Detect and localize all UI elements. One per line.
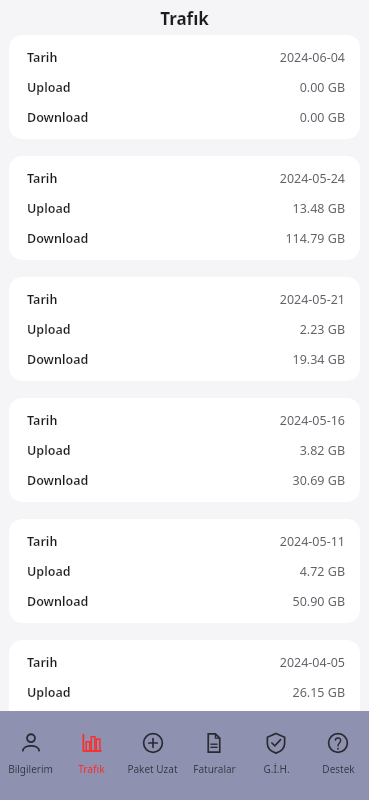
- staticText: Upload: [27, 200, 71, 217]
- button[interactable]: Tarih: [9, 519, 360, 623]
- staticText: Download: [27, 472, 89, 489]
- staticText: Download: [27, 230, 89, 247]
- staticText: Tarih: [27, 654, 58, 671]
- button[interactable]: Bilgilerim: [0, 711, 61, 800]
- button[interactable]: Tarih: [9, 277, 360, 381]
- staticText: 0.00 GB: [299, 79, 345, 96]
- staticText: Tarih: [27, 170, 58, 187]
- staticText: Tarih: [27, 291, 58, 308]
- staticText: Upload: [27, 321, 71, 338]
- button[interactable]: Tarih: [9, 640, 360, 744]
- button[interactable]: Faturalar: [183, 711, 245, 800]
- staticText: 26.15 GB: [292, 684, 345, 701]
- staticText: 3.82 GB: [299, 442, 345, 459]
- staticText: 2024-05-21: [279, 291, 345, 308]
- staticText: 2024-05-24: [279, 170, 345, 187]
- staticText: G.İ.H.: [263, 762, 290, 776]
- staticText: 2024-06-04: [279, 49, 345, 66]
- staticText: 0.00 GB: [299, 109, 345, 126]
- staticText: Upload: [27, 442, 71, 459]
- staticText: 114.79 GB: [285, 230, 345, 247]
- staticText: Download: [27, 593, 89, 610]
- staticText: 2.23 GB: [299, 321, 345, 338]
- staticText: 50.90 GB: [292, 593, 345, 610]
- staticText: Tarih: [27, 49, 58, 66]
- staticText: Trafık: [78, 762, 105, 776]
- button[interactable]: Tarih: [9, 398, 360, 502]
- button[interactable]: G.İ.H.: [245, 711, 307, 800]
- staticText: Download: [27, 109, 89, 126]
- staticText: 2024-05-11: [279, 533, 345, 550]
- staticText: Tarih: [27, 533, 58, 550]
- staticText: Tarih: [27, 412, 58, 429]
- staticText: 13.48 GB: [292, 200, 345, 217]
- staticText: 2024-04-05: [279, 654, 345, 671]
- staticText: Trafık: [160, 7, 209, 30]
- staticText: 19.34 GB: [292, 351, 345, 368]
- button[interactable]: Paket Uzat: [122, 711, 183, 800]
- staticText: 30.69 GB: [292, 472, 345, 489]
- staticText: Upload: [27, 684, 71, 701]
- staticText: Destek: [322, 762, 355, 776]
- staticText: Upload: [27, 563, 71, 580]
- staticText: Bilgilerim: [8, 762, 53, 776]
- staticText: Upload: [27, 79, 71, 96]
- button[interactable]: Tarih: [9, 156, 360, 260]
- button[interactable]: Trafık: [61, 711, 122, 800]
- button[interactable]: Tarih: [9, 35, 360, 139]
- staticText: Download: [27, 351, 89, 368]
- staticText: 4.72 GB: [299, 563, 345, 580]
- staticText: Paket Uzat: [127, 762, 178, 776]
- button[interactable]: Destek: [307, 711, 369, 800]
- staticText: 2024-05-16: [279, 412, 345, 429]
- staticText: Faturalar: [193, 762, 236, 776]
